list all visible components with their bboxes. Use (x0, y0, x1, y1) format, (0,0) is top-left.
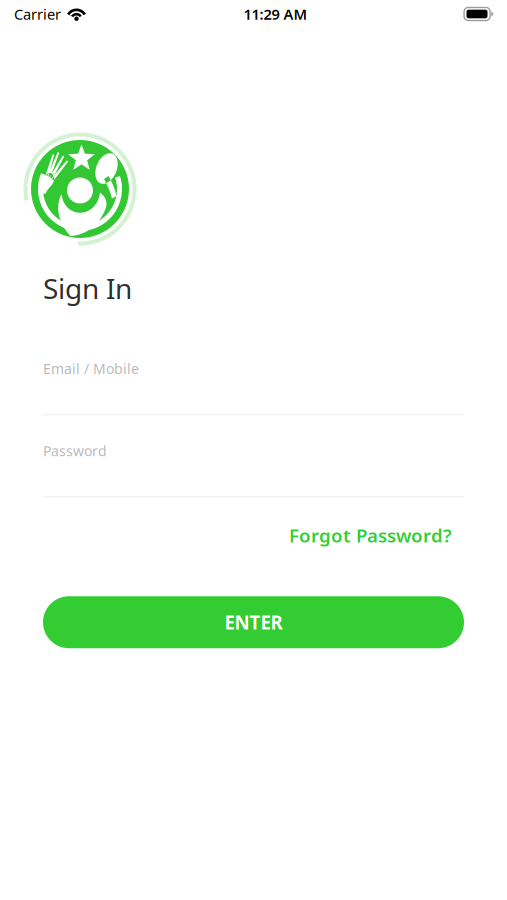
staticText: Carrier (14, 4, 61, 24)
button[interactable]: Forgot Password? (289, 520, 452, 550)
staticText: ENTER (224, 610, 282, 635)
staticText: 11:29 AM (243, 4, 307, 24)
staticText: Sign In (43, 269, 132, 307)
staticText: Forgot Password? (289, 523, 452, 548)
staticText: Password (43, 441, 107, 460)
staticText: Email / Mobile (43, 359, 139, 378)
button[interactable]: ENTER (43, 596, 464, 648)
